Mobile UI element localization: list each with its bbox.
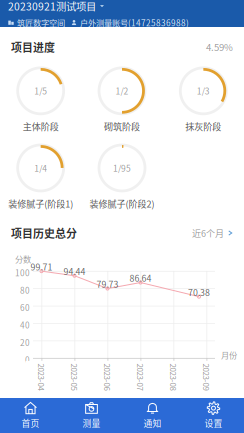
staticText: 户外测量账号(14725836988) [80,16,189,28]
staticText: 1/4 [34,162,47,174]
button[interactable]: 测量 [61,397,122,433]
staticText: 2023-09 [193,371,220,383]
staticText: 1/3 [197,85,210,97]
staticText: 2023-07 [127,371,154,383]
staticText: 2023-08 [160,371,187,383]
staticText: 70.38 [188,286,210,298]
staticText: 测量 [82,417,100,429]
staticText: 20230921测试项目 [8,0,96,14]
staticText: 装修腻子(阶段1) [8,197,73,210]
staticText: 2023-05 [61,371,88,383]
staticText: 筑匠数字空间 [17,16,65,28]
staticText: 首页 [21,417,39,429]
staticText: 60 [20,301,30,313]
staticText: 砌筑阶段 [104,120,140,133]
staticText: 0 [25,354,30,366]
staticText: 2023-04 [28,371,55,383]
staticText: 99.71 [30,260,52,273]
staticText: 装修腻子(阶段2) [89,197,154,210]
staticText: 1/5 [34,85,47,97]
button[interactable]: 20230921测试项目 [8,0,236,14]
staticText: 1/2 [115,85,128,97]
staticText: 40 [20,319,30,331]
staticText: 设置 [204,417,222,429]
staticText: 抹灰阶段 [185,120,221,133]
staticText: 月份 [221,349,237,361]
button[interactable]: 设置 [183,397,244,433]
staticText: 项目历史总分 [11,225,77,241]
button[interactable]: 通知 [122,397,183,433]
staticText: 通知 [143,417,161,429]
staticText: 94.44 [63,265,85,277]
staticText: 分数 [15,253,31,265]
staticText: 2023-06 [94,371,121,383]
staticText: 1/95 [113,162,131,174]
staticText: 100 [15,267,30,279]
staticText: 近6个月 [192,226,224,239]
button[interactable]: 近6个月 [192,226,233,239]
button[interactable]: 首页 [0,397,61,433]
staticText: 20 [20,336,30,348]
staticText: 4.59% [206,40,233,54]
staticText: 项目进度 [11,39,55,55]
staticText: 主体阶段 [23,120,59,133]
staticText: 86.64 [129,271,151,284]
staticText: 79.73 [96,278,118,290]
staticText: 80 [20,284,30,296]
